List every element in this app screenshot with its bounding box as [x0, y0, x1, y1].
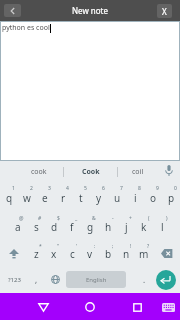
button[interactable]: g	[81, 213, 99, 241]
button[interactable]: b	[99, 241, 117, 266]
staticText: 0	[174, 185, 177, 192]
staticText: ?	[147, 243, 150, 250]
staticText: w	[23, 191, 31, 205]
staticText: 9	[156, 185, 159, 192]
staticText: coil	[132, 167, 144, 177]
button[interactable]: o	[144, 183, 162, 213]
staticText: Cook	[82, 167, 100, 177]
staticText: x	[51, 247, 57, 261]
button[interactable]: t	[72, 183, 90, 213]
staticText: @	[19, 215, 24, 222]
staticText: English	[86, 276, 107, 284]
staticText: z	[34, 247, 39, 261]
staticText: &	[92, 215, 96, 222]
staticText: (	[148, 215, 150, 222]
button[interactable]: ,	[28, 266, 44, 293]
staticText: c	[70, 247, 75, 261]
button[interactable]: y	[90, 183, 108, 213]
staticText: s	[34, 220, 39, 234]
button[interactable]: j	[117, 213, 135, 241]
button[interactable]	[156, 270, 176, 290]
button[interactable]: c	[63, 241, 81, 266]
staticText: ,	[35, 274, 38, 285]
staticText: $	[57, 215, 60, 222]
staticText: '	[76, 243, 78, 250]
staticText: p	[168, 191, 175, 205]
button[interactable]: m	[135, 241, 153, 266]
staticText: l	[161, 220, 164, 234]
button[interactable]	[128, 298, 146, 316]
button[interactable]: n	[117, 241, 135, 266]
staticText: u	[114, 191, 121, 205]
button[interactable]: h	[99, 213, 117, 241]
button[interactable]: Cook	[64, 161, 117, 183]
staticText: #	[38, 215, 42, 222]
staticText: +	[129, 215, 132, 222]
button[interactable]: English	[66, 271, 126, 288]
staticText: X	[162, 6, 167, 17]
button[interactable]: .	[132, 266, 156, 293]
staticText: New note	[72, 5, 108, 16]
staticText: ;	[112, 243, 114, 250]
staticText: m	[139, 247, 149, 261]
button[interactable]: u	[108, 183, 126, 213]
button[interactable]: f	[63, 213, 81, 241]
button[interactable]	[154, 241, 180, 266]
staticText: a	[15, 220, 21, 234]
button[interactable]: python es cool	[0, 21, 180, 161]
button[interactable]	[34, 298, 52, 316]
staticText: f	[70, 220, 74, 234]
staticText: i	[134, 191, 137, 205]
staticText: _	[75, 215, 78, 222]
staticText: 1	[12, 185, 15, 192]
button[interactable]: q	[0, 183, 18, 213]
staticText: cook	[31, 167, 47, 177]
button[interactable]: cook	[14, 161, 63, 183]
staticText: 4	[66, 185, 69, 192]
button[interactable]: p	[162, 183, 180, 213]
button[interactable]	[44, 266, 66, 293]
staticText: )	[166, 215, 168, 222]
staticText: :	[94, 243, 96, 250]
staticText: d	[51, 220, 58, 234]
staticText: 2	[30, 185, 33, 192]
button[interactable]: i	[126, 183, 144, 213]
button[interactable]	[159, 298, 177, 316]
button[interactable]: k	[135, 213, 153, 241]
button[interactable]: d	[45, 213, 63, 241]
staticText: n	[123, 247, 130, 261]
button[interactable]: w	[18, 183, 36, 213]
button[interactable]: z	[27, 241, 45, 266]
button[interactable]: v	[81, 241, 99, 266]
staticText: "	[57, 243, 60, 250]
staticText: *	[39, 243, 42, 250]
staticText: k	[141, 220, 147, 234]
staticText: r	[61, 191, 66, 205]
staticText: 6	[102, 185, 105, 192]
staticText: q	[6, 191, 13, 205]
staticText: e	[42, 191, 48, 205]
button[interactable]: X	[157, 4, 172, 18]
staticText: b	[105, 247, 112, 261]
staticText: !	[130, 243, 132, 250]
button[interactable]	[0, 241, 27, 266]
button[interactable]	[158, 159, 180, 181]
staticText: g	[87, 220, 94, 234]
button[interactable]: ?123	[0, 266, 28, 293]
button[interactable]: e	[36, 183, 54, 213]
staticText: y	[96, 191, 102, 205]
button[interactable]: a	[9, 213, 27, 241]
button[interactable]: s	[27, 213, 45, 241]
button[interactable]: x	[45, 241, 63, 266]
button[interactable]	[4, 4, 21, 17]
staticText: 8	[138, 185, 141, 192]
button[interactable]: coil	[118, 161, 158, 183]
button[interactable]	[81, 298, 99, 316]
staticText: .	[143, 274, 146, 285]
staticText: ?123	[8, 276, 21, 284]
staticText: v	[87, 247, 93, 261]
staticText: j	[125, 220, 128, 234]
staticText: 3	[48, 185, 51, 192]
button[interactable]: r	[54, 183, 72, 213]
button[interactable]: l	[153, 213, 171, 241]
